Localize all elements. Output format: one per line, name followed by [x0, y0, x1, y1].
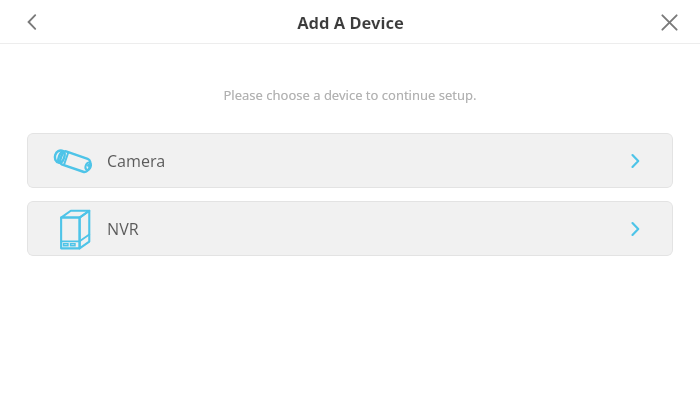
button[interactable]: NVR	[27, 201, 673, 256]
staticText: Add A Device	[297, 11, 404, 33]
button[interactable]: Back	[14, 4, 50, 40]
button[interactable]: Camera	[27, 133, 673, 188]
staticText: NVR	[107, 218, 139, 240]
staticText: Please choose a device to continue setup…	[223, 86, 477, 104]
staticText: Camera	[107, 150, 166, 172]
button[interactable]: Close	[651, 4, 687, 40]
